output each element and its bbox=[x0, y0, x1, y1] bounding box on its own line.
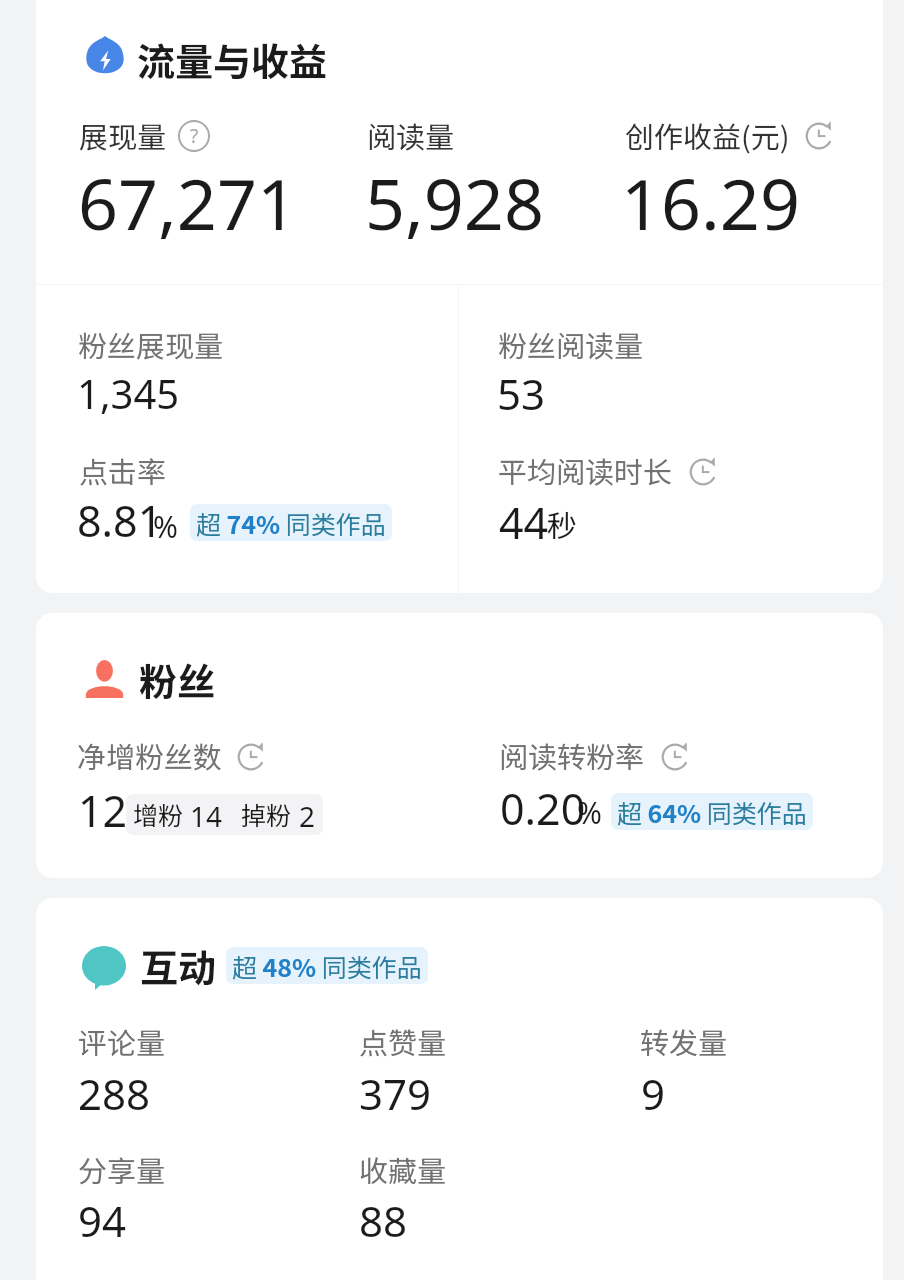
staticText: 阅读量 bbox=[367, 114, 455, 156]
staticText: 粉丝阅读量 bbox=[498, 323, 644, 365]
staticText: 1,345 bbox=[77, 366, 180, 420]
staticText: 点赞量 bbox=[359, 1020, 447, 1062]
staticText: 67,271 bbox=[78, 155, 297, 250]
other: Data updated recently bbox=[236, 741, 268, 773]
staticText: 掉粉 bbox=[241, 796, 292, 832]
staticText: 88 bbox=[359, 1192, 408, 1249]
button[interactable] bbox=[126, 794, 323, 835]
staticText: 288 bbox=[78, 1065, 151, 1122]
staticText: 分享量 bbox=[78, 1148, 166, 1190]
staticText: 秒 bbox=[547, 502, 577, 545]
staticText: % bbox=[153, 506, 178, 547]
staticText: 净增粉丝数 bbox=[77, 734, 223, 776]
staticText: ? bbox=[190, 122, 199, 148]
button[interactable]: 互动 bbox=[80, 942, 222, 990]
other: Data updated recently bbox=[660, 741, 692, 773]
staticText: 44 bbox=[499, 493, 549, 552]
staticText: 16.29 bbox=[621, 155, 800, 250]
staticText: 阅读转粉率 bbox=[499, 734, 645, 776]
staticText: 互动 bbox=[140, 938, 217, 993]
button[interactable]: 粉丝 bbox=[80, 654, 225, 706]
staticText: 平均阅读时长 bbox=[498, 449, 673, 491]
staticText: 收藏量 bbox=[359, 1148, 447, 1190]
staticText: 展现量 bbox=[79, 114, 167, 156]
staticText: 粉丝展现量 bbox=[78, 323, 224, 365]
staticText: 94 bbox=[78, 1192, 127, 1249]
staticText: 9 bbox=[641, 1065, 666, 1122]
staticText: 2 bbox=[299, 797, 316, 835]
staticText: 流量与收益 bbox=[137, 32, 328, 87]
staticText: 粉丝 bbox=[139, 652, 216, 707]
staticText: % bbox=[577, 792, 602, 833]
button[interactable]: 流量与收益 bbox=[80, 33, 330, 87]
other: Data updated recently bbox=[804, 120, 836, 152]
staticText: 点击率 bbox=[79, 449, 167, 491]
button[interactable]: 超 64% 同类作品 bbox=[611, 793, 813, 830]
staticText: 8.81 bbox=[77, 491, 163, 550]
staticText: 379 bbox=[359, 1065, 432, 1122]
staticText: 评论量 bbox=[78, 1020, 166, 1062]
staticText: 超 48% 同类作品 bbox=[232, 948, 422, 984]
button[interactable]: 超 74% 同类作品 bbox=[190, 504, 392, 541]
staticText: 12 bbox=[78, 781, 128, 840]
staticText: 0.20 bbox=[500, 779, 586, 838]
staticText: 5,928 bbox=[365, 155, 544, 250]
staticText: 创作收益(元) bbox=[625, 114, 790, 156]
button[interactable]: 超 48% 同类作品 bbox=[226, 947, 428, 984]
staticText: 超 64% 同类作品 bbox=[617, 794, 807, 830]
button[interactable]: About impressions bbox=[178, 120, 210, 152]
staticText: 14 bbox=[190, 797, 223, 835]
staticText: 53 bbox=[497, 365, 546, 422]
other: Data updated recently bbox=[688, 456, 720, 488]
staticText: 增粉 bbox=[133, 796, 184, 832]
staticText: 转发量 bbox=[640, 1020, 728, 1062]
staticText: 超 74% 同类作品 bbox=[196, 505, 386, 541]
